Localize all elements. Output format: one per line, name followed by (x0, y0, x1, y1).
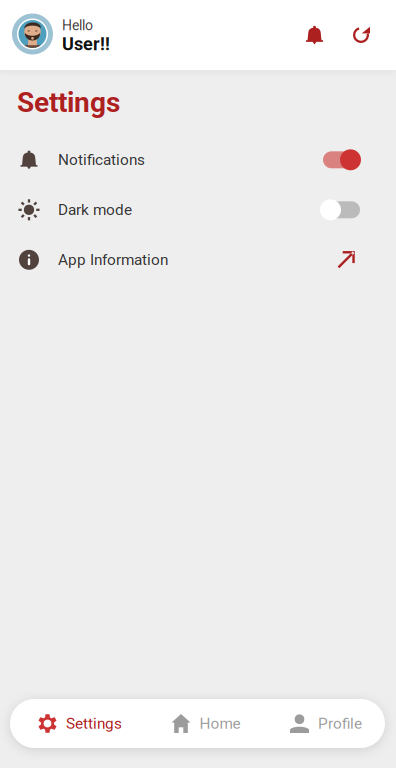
staticText: Home (199, 714, 240, 732)
button[interactable]: App Information (0, 235, 396, 285)
staticText: Dark mode (58, 201, 132, 219)
staticText: App Information (58, 251, 168, 269)
button[interactable]: Notifications (0, 135, 396, 185)
button[interactable]: Notifications (290, 11, 339, 59)
staticText: User!! (62, 34, 110, 55)
button[interactable]: Settings (38, 699, 122, 748)
staticText: Settings (17, 86, 120, 119)
staticText: Settings (66, 714, 122, 732)
staticText: Profile (318, 714, 362, 732)
staticText: Notifications (58, 151, 145, 169)
button[interactable]: Dark mode (0, 185, 396, 235)
button[interactable]: Refresh (339, 11, 383, 59)
button[interactable]: Home (171, 699, 240, 748)
staticText: Hello (62, 17, 93, 34)
button[interactable]: Profile (290, 699, 362, 748)
